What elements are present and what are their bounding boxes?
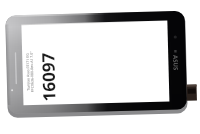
button[interactable]: ASUS brand xyxy=(168,48,186,82)
button[interactable]: Tablet display preview xyxy=(22,22,168,103)
button[interactable]: Ribbon connector xyxy=(183,86,198,104)
